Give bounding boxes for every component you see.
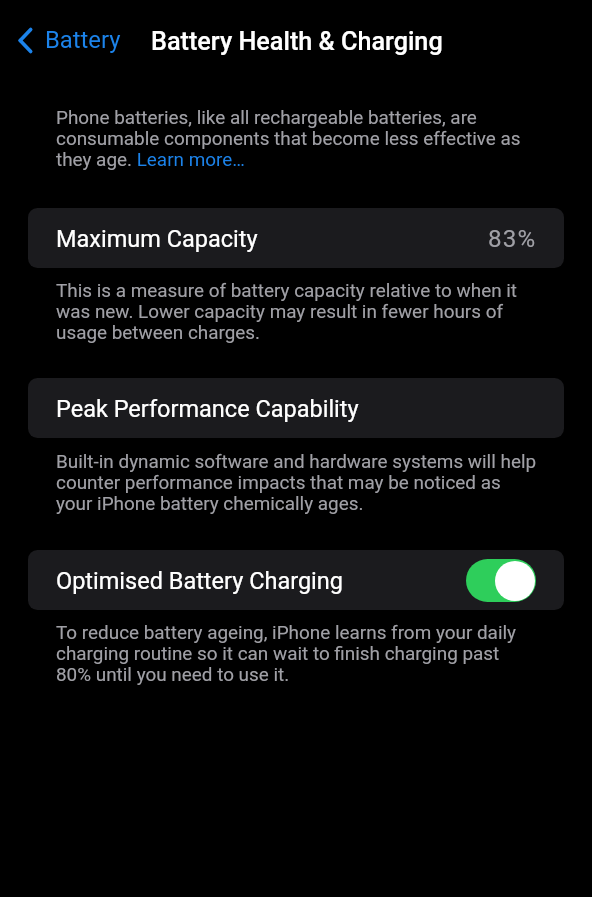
button[interactable]: Learn more about battery health (134, 148, 250, 172)
button[interactable]: Optimised Battery Charging (28, 550, 564, 610)
staticText: Battery (45, 26, 121, 54)
staticText: Built-in dynamic software and hardware s… (56, 451, 538, 514)
button[interactable]: Maximum Capacity (28, 208, 564, 268)
button[interactable]: Back to Battery (12, 19, 129, 61)
staticText: Battery Health & Charging (151, 27, 443, 57)
staticText: Optimised Battery Charging (56, 567, 343, 595)
staticText: To reduce battery ageing, iPhone learns … (56, 622, 538, 685)
staticText: Peak Performance Capability (56, 395, 359, 423)
staticText: Maximum Capacity (56, 225, 258, 253)
button[interactable]: Peak Performance Capability (28, 378, 564, 438)
staticText: Phone batteries, like all rechargeable b… (56, 107, 538, 170)
staticText: This is a measure of battery capacity re… (56, 280, 538, 343)
staticText: 83% (488, 225, 537, 253)
button[interactable]: Optimised Battery Charging (466, 559, 536, 602)
